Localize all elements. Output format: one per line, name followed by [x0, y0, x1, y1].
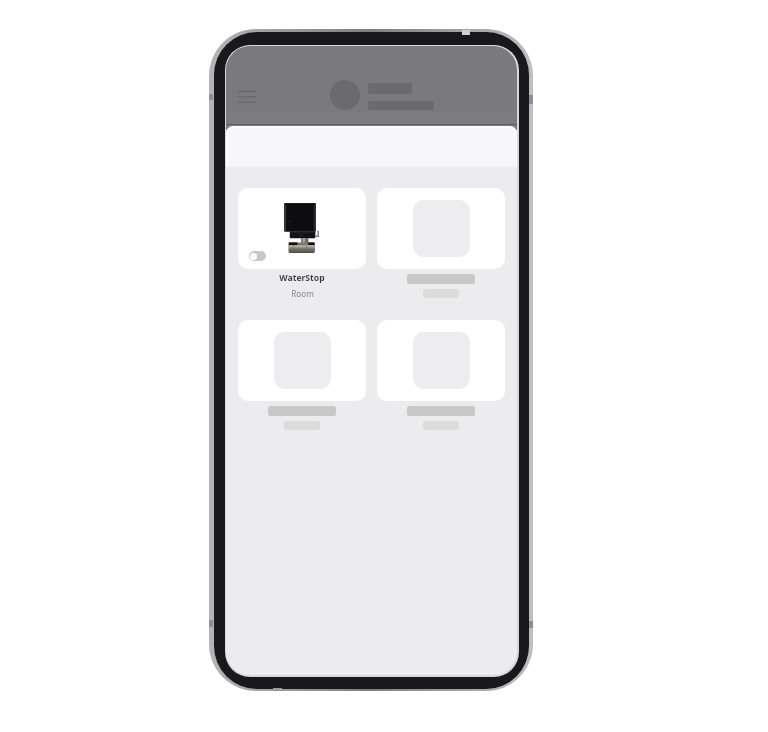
button[interactable]: [377, 188, 505, 298]
staticText: Room: [291, 288, 314, 299]
button[interactable]: [377, 320, 505, 430]
staticText: WaterStop: [279, 272, 325, 284]
button[interactable]: Toggle WaterStop: [238, 188, 366, 299]
button[interactable]: [238, 320, 366, 430]
button[interactable]: Toggle WaterStop: [249, 251, 266, 261]
button[interactable]: Menu: [233, 82, 261, 110]
